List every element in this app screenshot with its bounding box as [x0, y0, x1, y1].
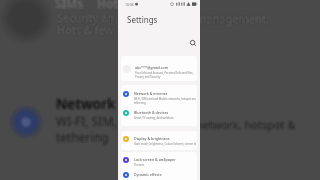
- staticText: tethering: [55, 130, 108, 146]
- staticText: Security an: [58, 11, 116, 26]
- staticText: Hots & few: [55, 23, 112, 38]
- staticText: Network &: [57, 93, 131, 112]
- staticText: Hot: [96, 0, 118, 10]
- button[interactable]: Dynamic effects: [121, 167, 197, 178]
- staticText: SIMs: [56, 0, 85, 12]
- staticText: network, hotspot &: [197, 119, 297, 134]
- staticText: management,: [195, 12, 268, 27]
- staticText: management,: [195, 12, 268, 27]
- button[interactable]: Lock screen & wallpaper: [121, 152, 197, 167]
- staticText: Hot: [95, 0, 117, 10]
- staticText: management,: [195, 12, 268, 27]
- staticText: Network &: [55, 96, 129, 115]
- staticText: Network &: [55, 93, 129, 112]
- staticText: Security an: [56, 12, 114, 27]
- staticText: tethering: [58, 129, 111, 145]
- staticText: network, hotspot &: [195, 119, 295, 134]
- staticText: tethering: [56, 127, 109, 143]
- staticText: Network &: [56, 95, 130, 114]
- staticText: Hot: [99, 0, 121, 10]
- staticText: SIMs: [55, 0, 84, 10]
- staticText: Network &: [54, 95, 128, 114]
- staticText: network, hotspot &: [195, 116, 295, 131]
- staticText: SIMs: [57, 0, 86, 11]
- staticText: WI-FI, SIM,: [57, 111, 118, 127]
- staticText: Network &: [56, 95, 130, 114]
- staticText: Hots & few: [57, 23, 114, 38]
- staticText: tethering: [54, 130, 107, 146]
- staticText: Hots & few: [58, 22, 115, 37]
- staticText: Security an: [56, 11, 114, 26]
- staticText: management,: [197, 9, 270, 24]
- staticText: tethering: [58, 128, 111, 144]
- button[interactable]: abc***@gmail.com: [121, 56, 197, 79]
- staticText: SIMs: [56, 0, 85, 10]
- staticText: management,: [198, 10, 271, 25]
- button[interactable]: Network & internet: [121, 85, 197, 105]
- staticText: 10:06: [125, 2, 134, 7]
- staticText: Hots & few: [57, 21, 114, 36]
- staticText: Security an: [57, 9, 115, 24]
- staticText: Network &: [57, 96, 131, 115]
- staticText: WI-FI, SIM,: [55, 115, 116, 131]
- staticText: Network &: [55, 92, 129, 111]
- staticText: Hot: [99, 0, 121, 10]
- staticText: Network &: [56, 93, 130, 112]
- staticText: Hots & few: [56, 24, 113, 39]
- staticText: Hot: [98, 0, 120, 10]
- staticText: network, hotspot &: [195, 118, 295, 133]
- staticText: Security an: [59, 11, 117, 26]
- staticText: tethering: [57, 128, 110, 144]
- staticText: Network &: [55, 93, 129, 112]
- staticText: management,: [195, 12, 268, 27]
- staticText: Hot: [99, 0, 121, 12]
- staticText: Hots & few: [58, 24, 115, 39]
- staticText: management,: [197, 13, 270, 28]
- staticText: WI-FI, SIM,: [56, 112, 117, 128]
- staticText: Hot: [96, 0, 118, 12]
- staticText: Hot: [98, 0, 120, 12]
- staticText: SIMs: [57, 0, 86, 12]
- staticText: Hots & few: [58, 23, 115, 38]
- staticText: Hots & few: [56, 23, 113, 38]
- staticText: WI-FI, SIM,: [55, 111, 116, 127]
- staticText: management,: [196, 11, 269, 26]
- staticText: WI-FI, SIM,: [58, 113, 119, 129]
- staticText: SIMs: [56, 0, 85, 12]
- staticText: Hot: [95, 0, 117, 12]
- staticText: network, hotspot &: [195, 116, 295, 131]
- staticText: WI-FI, SIM,: [57, 115, 118, 131]
- staticText: SIMs: [53, 0, 82, 10]
- staticText: Network &: [57, 92, 131, 111]
- staticText: Security an: [56, 9, 114, 24]
- staticText: management,: [197, 13, 270, 28]
- staticText: SIMs: [54, 0, 83, 10]
- staticText: Network &: [57, 95, 131, 114]
- staticText: Security an: [56, 8, 114, 23]
- staticText: WI-FI, SIM,: [55, 112, 116, 128]
- staticText: tethering: [55, 129, 108, 145]
- button[interactable]: Bluetooth & devices: [121, 105, 197, 120]
- staticText: tethering: [58, 130, 111, 146]
- staticText: Hot: [97, 0, 119, 11]
- staticText: Network &: [57, 95, 131, 114]
- staticText: network, hotspot &: [195, 115, 295, 130]
- staticText: Hot: [96, 0, 118, 10]
- staticText: Hots & few: [57, 20, 114, 35]
- staticText: management,: [198, 12, 271, 27]
- staticText: tethering: [54, 129, 107, 145]
- staticText: management,: [197, 12, 270, 27]
- staticText: SIMs: [56, 0, 85, 12]
- staticText: WI-FI, SIM,: [58, 112, 119, 128]
- staticText: management,: [196, 12, 269, 27]
- staticText: Hots & few: [57, 21, 114, 36]
- staticText: Hot: [97, 0, 119, 12]
- staticText: tethering: [55, 127, 108, 143]
- staticText: Security an: [58, 12, 116, 27]
- staticText: Network &: [58, 95, 132, 114]
- button[interactable]: Display & brightness: [121, 131, 197, 146]
- staticText: WI-FI, SIM,: [55, 112, 116, 128]
- staticText: network, hotspot &: [196, 116, 296, 131]
- button[interactable]: Search: [189, 39, 198, 48]
- staticText: Network &: [54, 95, 128, 114]
